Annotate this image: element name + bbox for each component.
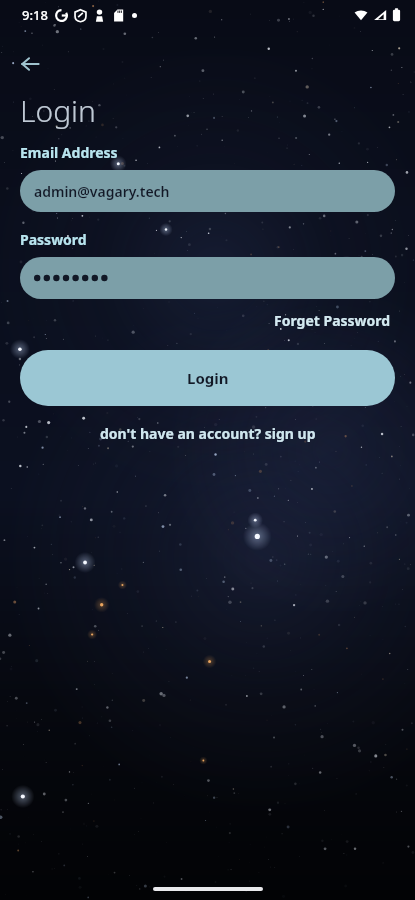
- button[interactable]: Login: [20, 350, 395, 406]
- staticText: 9:18: [22, 6, 48, 24]
- staticText: Forget Password: [274, 311, 391, 330]
- button[interactable]: [20, 257, 395, 299]
- button[interactable]: admin@vagary.tech: [20, 170, 395, 212]
- staticText: Email Address: [20, 143, 118, 162]
- button[interactable]: Back: [10, 44, 50, 84]
- staticText: Login: [20, 90, 96, 131]
- staticText: Login: [187, 368, 229, 388]
- button[interactable]: don't have an account? sign up: [96, 422, 320, 445]
- staticText: don't have an account? sign up: [100, 424, 316, 443]
- button[interactable]: Forget Password: [272, 309, 393, 332]
- staticText: admin@vagary.tech: [34, 182, 170, 201]
- staticText: Password: [20, 230, 87, 249]
